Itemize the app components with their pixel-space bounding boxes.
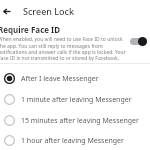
- staticText: 15 minutes after leaving Messenger: [21, 116, 139, 126]
- staticText: When enabled, you will need to use Face …: [0, 36, 128, 61]
- staticText: 1 hour after leaving Messenger: [21, 136, 124, 146]
- button[interactable]: 15 minutes after leaving Messenger: [0, 110, 150, 131]
- button[interactable]: 1 hour after leaving Messenger: [0, 131, 150, 150]
- staticText: After I leave Messenger: [21, 74, 99, 84]
- button[interactable]: After I leave Messenger: [0, 68, 150, 89]
- staticText: 1 minute after leaving Messenger: [21, 95, 132, 105]
- button[interactable]: Require Face ID: [0, 22, 150, 63]
- staticText: Require Face ID: [0, 24, 61, 35]
- button[interactable]: 1 minute after leaving Messenger: [0, 89, 150, 110]
- staticText: Screen Lock: [23, 5, 75, 17]
- button[interactable]: Back: [0, 2, 16, 20]
- button[interactable]: Require Face ID toggle: [130, 37, 147, 46]
